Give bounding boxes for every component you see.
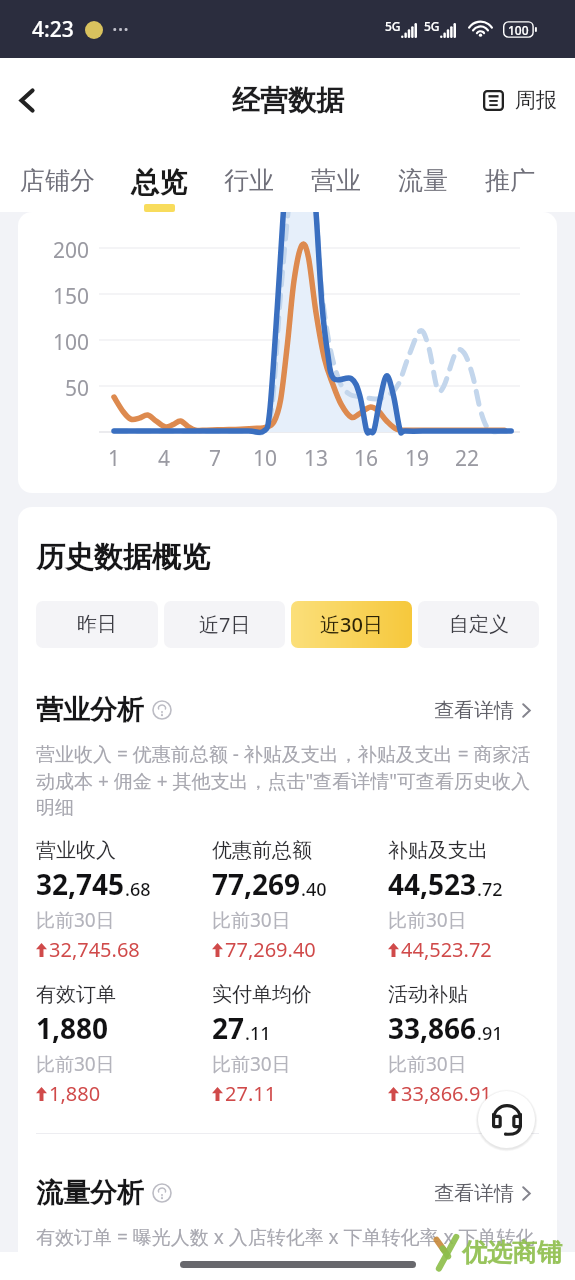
staticText: 150	[53, 282, 90, 311]
button[interactable]: 店铺分	[20, 142, 95, 210]
staticText: 活动补贴	[388, 982, 468, 1007]
staticText: 营业分析	[36, 693, 144, 727]
button[interactable]: 昨日	[36, 601, 158, 648]
staticText: 昨日	[77, 612, 117, 637]
staticText: 店铺分	[20, 165, 95, 196]
staticText: 32,745.68	[49, 936, 140, 963]
staticText: 1,880	[36, 1009, 109, 1047]
staticText: 32,745	[36, 865, 125, 903]
button[interactable]: 推广	[485, 142, 535, 210]
button[interactable]: 周报	[483, 87, 557, 113]
button[interactable]: 近7日	[164, 601, 285, 648]
staticText: 4:23	[32, 15, 74, 44]
staticText: 经营数据	[232, 83, 344, 118]
button[interactable]: 查看详情	[434, 1181, 539, 1206]
staticText: 推广	[485, 165, 535, 196]
staticText: 比前30日	[212, 907, 291, 933]
staticText: .40	[301, 877, 327, 902]
button[interactable]: Back	[4, 77, 50, 123]
staticText: 77,269.40	[225, 936, 316, 963]
staticText: 历史数据概览	[36, 539, 210, 576]
staticText: 比前30日	[388, 1051, 467, 1077]
staticText: 行业	[224, 165, 274, 196]
staticText: ···	[112, 15, 129, 44]
staticText: 比前30日	[36, 907, 115, 933]
staticText: 44,523	[388, 865, 477, 903]
staticText: 50	[65, 374, 90, 403]
staticText: 100	[53, 328, 90, 357]
staticText: 自定义	[449, 612, 509, 637]
staticText: 33,866.91	[401, 1080, 492, 1107]
staticText: 有效订单	[36, 982, 116, 1007]
staticText: 周报	[515, 87, 557, 113]
staticText: 优选商铺	[462, 1237, 562, 1268]
staticText: 补贴及支出	[388, 838, 488, 863]
staticText: 查看详情	[434, 698, 514, 723]
staticText: .11	[245, 1021, 271, 1046]
staticText: 总览	[131, 165, 187, 200]
staticText: 4	[158, 444, 171, 473]
button[interactable]: 自定义	[418, 601, 539, 648]
staticText: 营业收入	[36, 838, 116, 863]
staticText: 比前30日	[388, 907, 467, 933]
staticText: .68	[125, 877, 151, 902]
staticText: 1	[108, 444, 121, 473]
staticText: 13	[304, 444, 329, 473]
staticText: 近7日	[199, 611, 251, 638]
staticText: 33,866	[388, 1009, 477, 1047]
staticText: 优惠前总额	[212, 838, 312, 863]
staticText: 5G	[424, 18, 440, 34]
staticText: 44,523.72	[401, 936, 492, 963]
staticText: 营业	[311, 165, 361, 196]
staticText: .72	[477, 877, 503, 902]
staticText: 16	[354, 444, 379, 473]
staticText: 100	[508, 22, 529, 38]
button[interactable]: 流量	[398, 142, 448, 210]
staticText: 近30日	[320, 611, 383, 638]
staticText: 查看详情	[434, 1181, 514, 1206]
staticText: 10	[253, 444, 278, 473]
staticText: .91	[477, 1021, 503, 1046]
staticText: 1,880	[49, 1080, 101, 1107]
staticText: 流量分析	[36, 1176, 144, 1210]
staticText: 流量	[398, 165, 448, 196]
button[interactable]: Customer service	[477, 1090, 536, 1149]
staticText: 27	[212, 1009, 245, 1047]
staticText: 77,269	[212, 865, 301, 903]
button[interactable]: 近30日	[291, 601, 412, 648]
staticText: 7	[209, 444, 222, 473]
staticText: 19	[405, 444, 430, 473]
staticText: 27.11	[225, 1080, 277, 1107]
button[interactable]: 行业	[224, 142, 274, 210]
staticText: 营业收入 = 优惠前总额 - 补贴及支出，补贴及支出 = 商家活动成本 + 佣金…	[36, 741, 539, 820]
staticText: 22	[455, 444, 480, 473]
button[interactable]: 营业	[311, 142, 361, 210]
staticText: 5G	[385, 18, 401, 34]
staticText: 比前30日	[212, 1051, 291, 1077]
button[interactable]: 总览	[131, 142, 187, 212]
button[interactable]: 查看详情	[434, 698, 539, 723]
staticText: 比前30日	[36, 1051, 115, 1077]
staticText: 实付单均价	[212, 982, 312, 1007]
staticText: 有效订单 = 曝光人数 x 入店转化率 x 下单转化率 x 下单转化率	[36, 1224, 539, 1250]
staticText: 200	[53, 236, 90, 265]
